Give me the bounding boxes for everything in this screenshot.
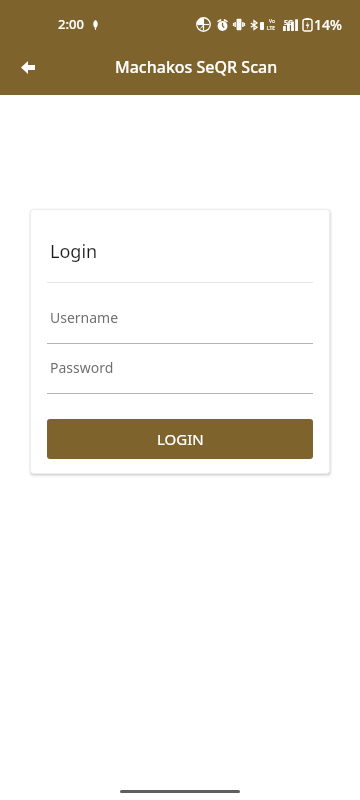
- staticText: LTE: [267, 25, 276, 32]
- button[interactable]: LOGIN: [47, 419, 313, 459]
- staticText: 2:00: [58, 15, 84, 33]
- staticText: Vo: [269, 18, 275, 25]
- staticText: Password: [50, 358, 114, 377]
- staticText: Machakos SeQR Scan: [115, 56, 278, 78]
- staticText: 5G: [284, 18, 294, 28]
- staticText: LOGIN: [157, 429, 204, 449]
- button[interactable]: Username: [47, 308, 313, 344]
- staticText: Login: [50, 239, 98, 264]
- button[interactable]: Password: [47, 358, 313, 394]
- staticText: 14%: [314, 15, 342, 34]
- button[interactable]: Back: [6, 45, 50, 89]
- staticText: Username: [50, 308, 119, 327]
